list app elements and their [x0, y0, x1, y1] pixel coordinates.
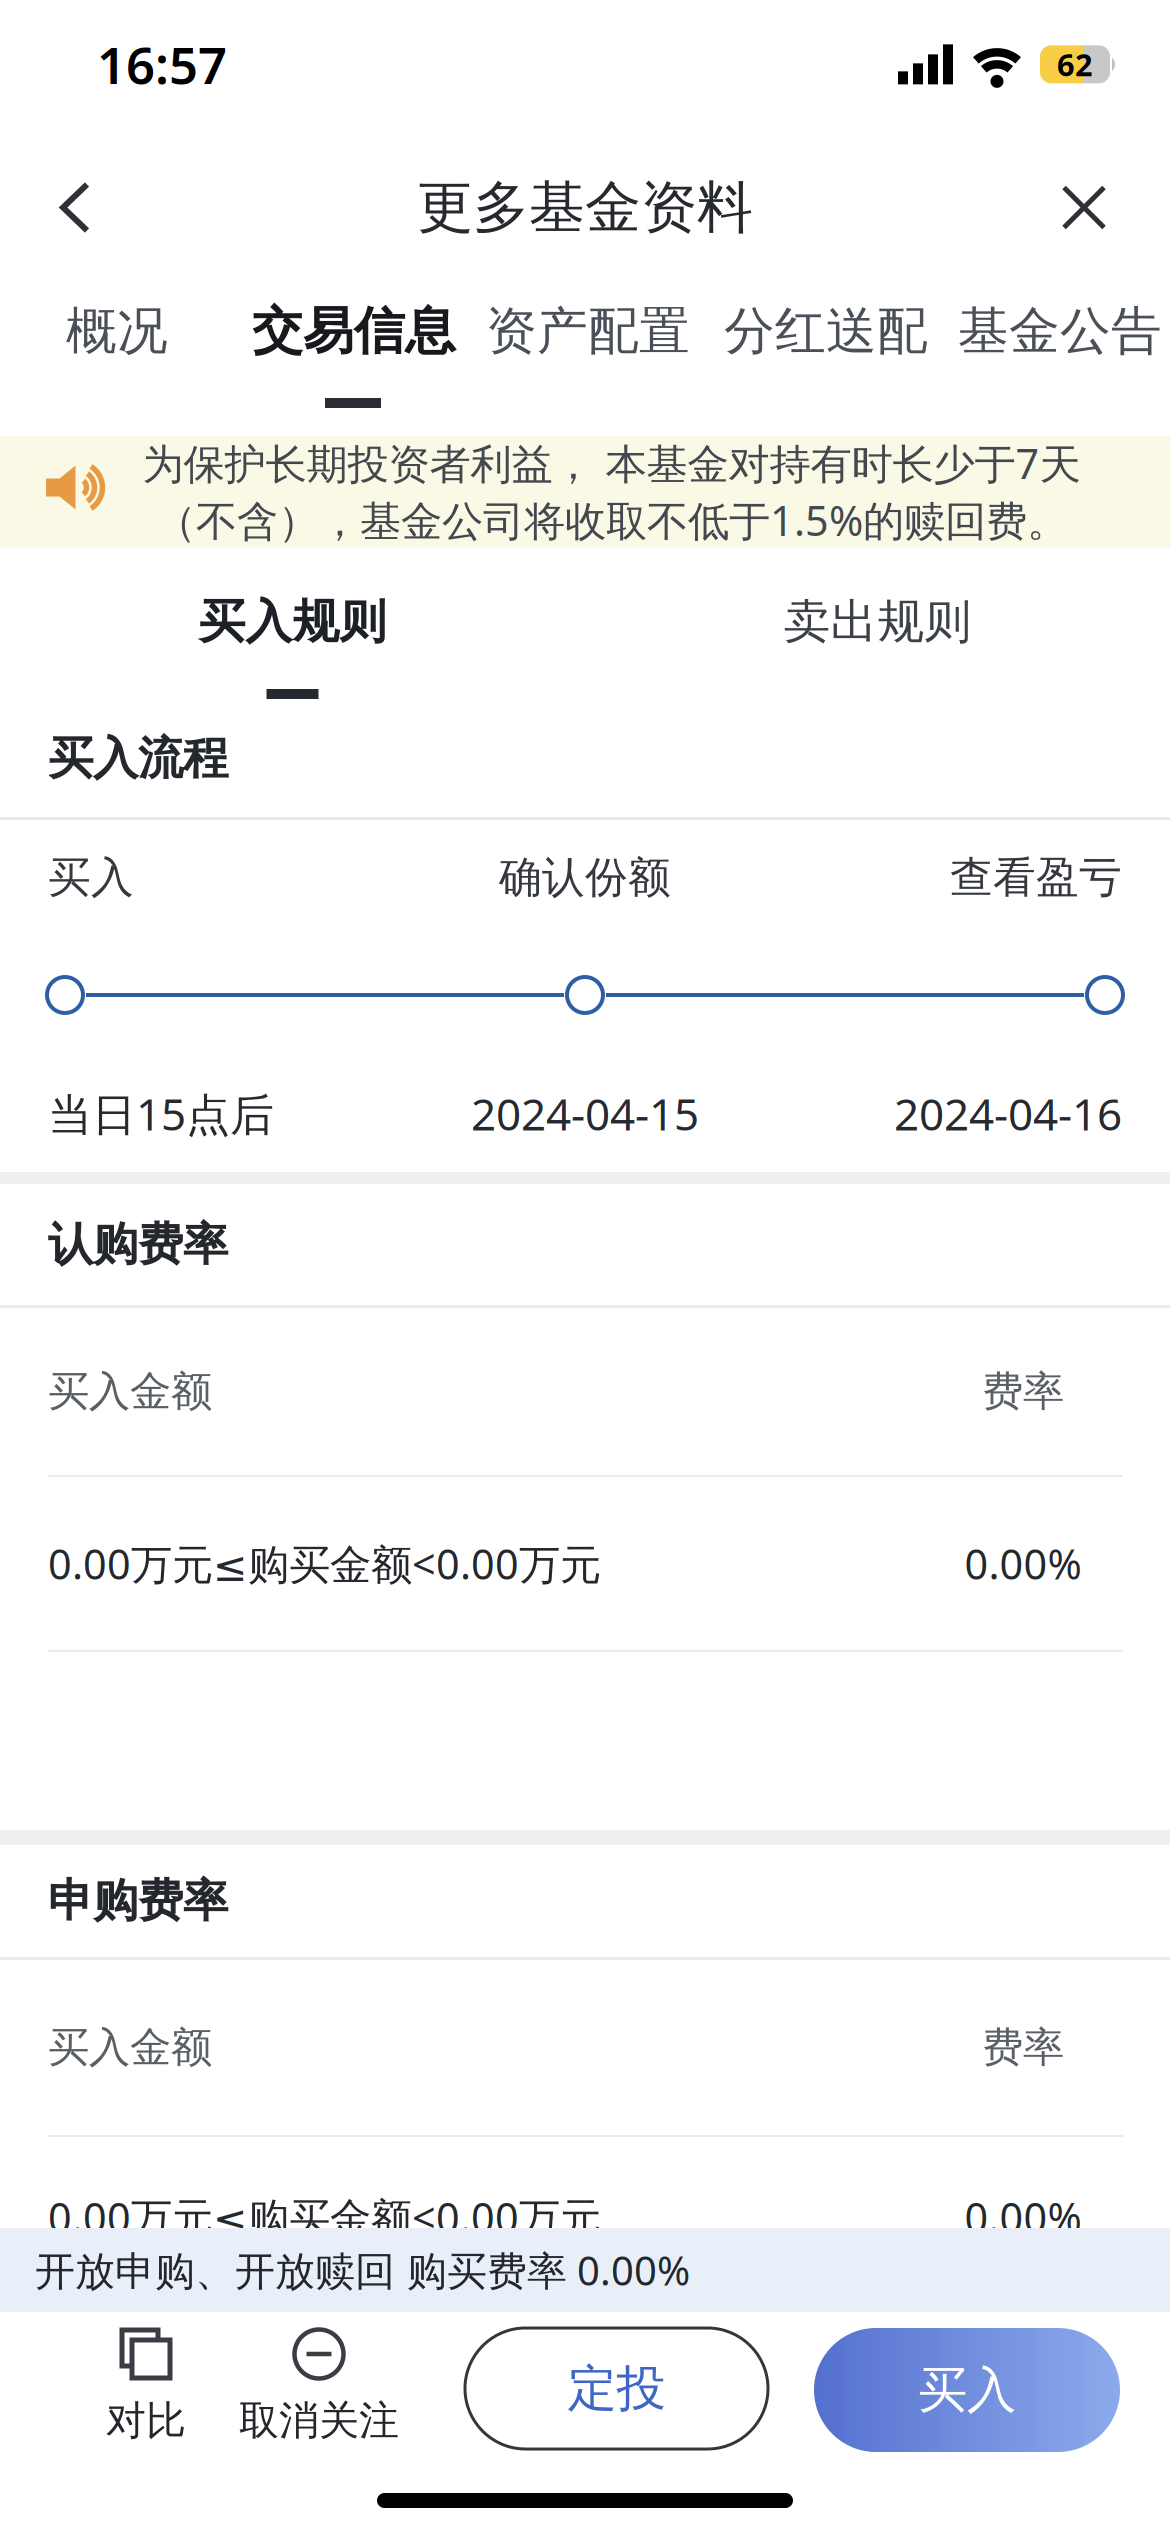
button[interactable]: 返回 — [0, 182, 122, 232]
button[interactable]: 交易信息 — [252, 300, 486, 362]
staticText: （不含），基金公司将收取不低于1.5%的赎回费。 — [155, 492, 1068, 547]
staticText: 更多基金资料 — [417, 173, 753, 242]
staticText: 当日15点后 — [48, 1084, 274, 1143]
staticText: 申购费率 — [48, 1873, 228, 1929]
button[interactable]: 卖出规则 — [585, 565, 1170, 700]
staticText: 认购费率 — [48, 1217, 228, 1272]
staticText: 交易信息 — [252, 300, 456, 362]
staticText: 2024-04-16 — [894, 1084, 1122, 1143]
staticText: 分红送配 — [724, 300, 928, 362]
button[interactable]: 取消关注 — [237, 2328, 401, 2445]
staticText: 62 — [1057, 44, 1093, 85]
button[interactable]: 买入规则 — [0, 565, 585, 700]
staticText: 基金公告 — [958, 300, 1162, 362]
staticText: 0.00% — [964, 1536, 1081, 1591]
staticText: 概况 — [66, 300, 168, 362]
staticText: 资产配置 — [486, 300, 690, 362]
staticText: 16:57 — [97, 31, 227, 98]
staticText: 取消关注 — [239, 2396, 399, 2445]
button[interactable]: 对比 — [105, 2328, 187, 2445]
staticText: 2024-04-15 — [471, 1084, 699, 1143]
staticText: 定投 — [567, 2358, 665, 2419]
staticText: 确认份额 — [499, 851, 671, 904]
staticText: 为保护长期投资者利益， 本基金对持有时长少于7天 — [142, 436, 1080, 490]
staticText: 卖出规则 — [783, 593, 971, 650]
button[interactable]: 关闭 — [1032, 185, 1170, 229]
staticText: 开放申购、开放赎回 购买费率 0.00% — [35, 2243, 690, 2296]
staticText: 买入 — [918, 2360, 1016, 2420]
staticText: 买入金额 — [48, 2022, 212, 2073]
staticText: 0.00万元≤购买金额<0.00万元 — [48, 1536, 601, 1591]
staticText: 买入流程 — [48, 731, 228, 786]
button[interactable]: 基金公告 — [958, 300, 1170, 362]
staticText: 0.00万元≤购买金额<0.00万元 — [48, 2190, 601, 2244]
staticText: 买入规则 — [198, 593, 386, 650]
button[interactable]: 概况 — [66, 300, 252, 362]
staticText: 查看盈亏 — [950, 851, 1122, 904]
button[interactable]: 买入 — [814, 2328, 1120, 2452]
button[interactable]: 资产配置 — [486, 300, 724, 362]
button[interactable]: 定投 — [465, 2328, 768, 2449]
staticText: 买入金额 — [48, 1366, 212, 1417]
staticText: 费率 — [982, 1366, 1064, 1417]
button[interactable]: 分红送配 — [724, 300, 958, 362]
staticText: 0.00% — [964, 2190, 1081, 2244]
staticText: 对比 — [106, 2396, 186, 2445]
staticText: 费率 — [982, 2022, 1064, 2073]
staticText: 买入 — [48, 851, 134, 904]
